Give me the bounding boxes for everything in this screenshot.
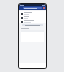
button[interactable] <box>19 15 46 19</box>
button[interactable] <box>19 19 46 23</box>
button[interactable] <box>22 24 43 26</box>
button[interactable] <box>19 11 46 15</box>
button[interactable] <box>23 7 42 9</box>
